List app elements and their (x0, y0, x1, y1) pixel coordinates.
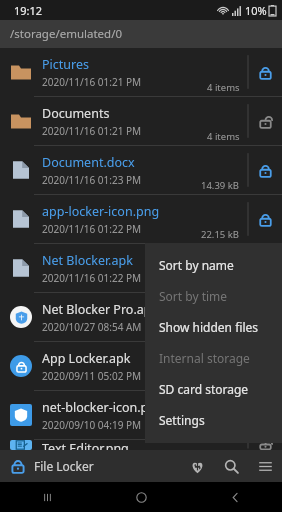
button[interactable]: Internal storage (145, 342, 282, 373)
button[interactable]: Search (214, 450, 248, 482)
button[interactable]: Unlocked (248, 293, 282, 341)
staticText: 2020/09/11 05:02 PM (42, 369, 142, 383)
button[interactable]: File Locker (0, 450, 180, 482)
staticText: 14.39 kB (201, 179, 240, 192)
button[interactable]: Locked (248, 195, 282, 243)
staticText: Settings (159, 412, 205, 428)
button[interactable]: net-blocker-icon.png (0, 391, 282, 440)
staticText: Show hidden files (159, 319, 258, 335)
staticText: 2020/11/16 01:22 PM (42, 271, 142, 285)
button[interactable]: Recents (0, 482, 94, 512)
button[interactable]: Pictures (0, 48, 282, 97)
button[interactable]: Back (188, 482, 282, 512)
button[interactable]: SD card storage (145, 373, 282, 404)
button[interactable]: Home (94, 482, 188, 512)
button[interactable]: Documents (0, 97, 282, 146)
button[interactable]: Unlocked (248, 440, 282, 450)
button[interactable]: Document.docx (0, 146, 282, 195)
staticText: 4 items (207, 130, 240, 143)
button[interactable]: Sort by name (145, 249, 282, 280)
button[interactable]: app-locker-icon.png (0, 195, 282, 244)
button[interactable]: Menu (248, 450, 282, 482)
staticText: /storage/emulated/0 (10, 26, 123, 42)
staticText: 22.15 kB (201, 228, 240, 241)
staticText: 10% (245, 3, 267, 18)
staticText: Sort by time (159, 288, 228, 304)
staticText: App Locker.apk (42, 350, 131, 367)
staticText: app-locker-icon.png (42, 203, 160, 220)
button[interactable]: Net Blocker Pro.apk (0, 293, 282, 342)
staticText: 2020/11/16 01:21 PM (42, 124, 142, 138)
staticText: File Locker (34, 458, 94, 474)
button[interactable]: Show hidden files (145, 311, 282, 342)
button[interactable]: Donate (180, 450, 214, 482)
button[interactable]: Locked (248, 146, 282, 194)
staticText: SD card storage (159, 381, 249, 397)
staticText: Internal storage (159, 350, 250, 366)
staticText: Text Editor.png (42, 440, 129, 450)
staticText: Sort by name (159, 257, 234, 273)
staticText: 2020/09/10 04:19 PM (42, 418, 142, 432)
button[interactable]: Settings (145, 404, 282, 435)
staticText: net-blocker-icon.png (42, 399, 164, 416)
staticText: Net Blocker Pro.apk (42, 301, 159, 318)
button[interactable]: App Locker.apk (0, 342, 282, 391)
button[interactable]: Net Blocker.apk (0, 244, 282, 293)
button[interactable]: Unlocked (248, 97, 282, 145)
staticText: Documents (42, 105, 110, 122)
staticText: 2020/11/16 01:21 PM (42, 75, 142, 89)
button[interactable]: Sort by time (145, 280, 282, 311)
staticText: Document.docx (42, 154, 135, 171)
staticText: 2020/11/16 01:22 PM (42, 222, 142, 236)
button[interactable]: Text Editor.png (0, 440, 282, 450)
staticText: 2020/11/16 01:23 PM (42, 173, 142, 187)
staticText: 19:12 (14, 3, 43, 18)
staticText: 2020/10/27 08:54 AM (42, 320, 142, 334)
staticText: Pictures (42, 56, 89, 73)
staticText: 4 items (207, 81, 240, 94)
staticText: Net Blocker.apk (42, 252, 133, 269)
button[interactable]: Locked (248, 48, 282, 96)
